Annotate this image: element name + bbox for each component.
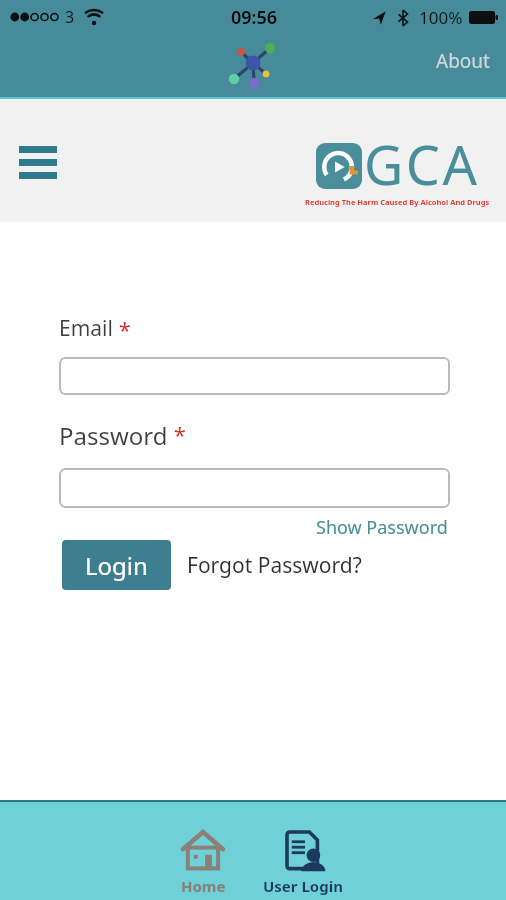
staticText: GCA [364, 127, 480, 201]
staticText: Home [181, 876, 226, 896]
staticText: Login [85, 549, 148, 582]
staticText: Reducing The Harm Caused By Alcohol And … [305, 197, 490, 207]
button[interactable]: User Login [253, 830, 353, 896]
button[interactable]: GCA [305, 129, 490, 213]
button[interactable]: Login [62, 540, 171, 590]
button[interactable] [59, 357, 450, 395]
staticText: Email [59, 314, 113, 343]
button[interactable] [59, 468, 450, 508]
button[interactable]: About [436, 48, 490, 74]
staticText: * [113, 314, 131, 344]
staticText: 09:56 [231, 5, 278, 30]
button[interactable]: Show Password [316, 515, 448, 540]
staticText: 3 [65, 6, 75, 28]
button[interactable]: Forgot Password? [187, 551, 362, 580]
staticText: 100% [419, 6, 463, 29]
staticText: Password [59, 419, 168, 452]
button[interactable] [230, 38, 278, 86]
staticText: User Login [263, 876, 343, 896]
staticText: * [168, 419, 186, 449]
button[interactable]: Home [153, 830, 253, 896]
button[interactable] [19, 146, 57, 179]
